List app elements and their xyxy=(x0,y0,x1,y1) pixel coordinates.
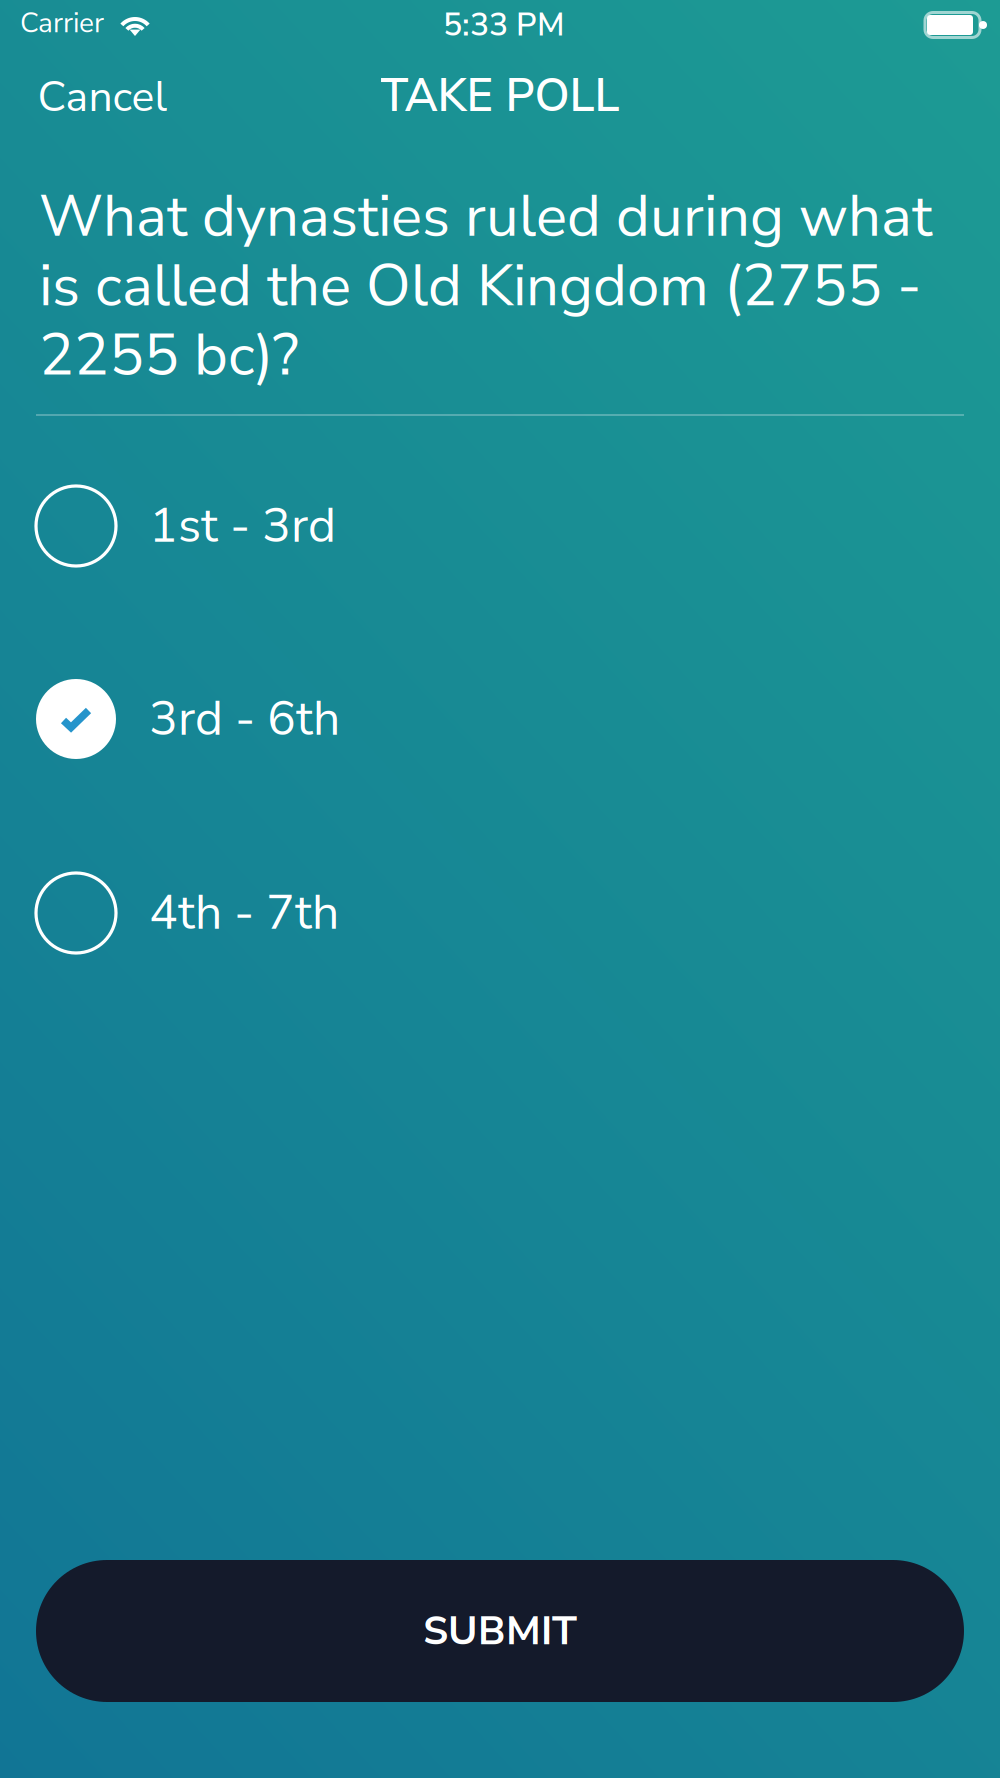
button[interactable]: 4th - 7th xyxy=(0,843,1000,983)
staticText: 1st - 3rd xyxy=(149,493,336,559)
button[interactable]: 1st - 3rd xyxy=(0,456,1000,596)
staticText: Carrier xyxy=(20,4,104,42)
staticText: 4th - 7th xyxy=(149,880,339,946)
staticText: TAKE POLL xyxy=(380,65,619,127)
staticText: 5:33 PM xyxy=(443,3,565,47)
button[interactable]: Cancel xyxy=(1,46,203,148)
button[interactable]: SUBMIT xyxy=(36,1560,964,1702)
staticText: SUBMIT xyxy=(423,1604,577,1658)
staticText: What dynasties ruled during what is call… xyxy=(39,177,932,395)
staticText: 3rd - 6th xyxy=(149,686,340,752)
staticText: Cancel xyxy=(37,68,167,126)
button[interactable]: 3rd - 6th xyxy=(0,649,1000,789)
